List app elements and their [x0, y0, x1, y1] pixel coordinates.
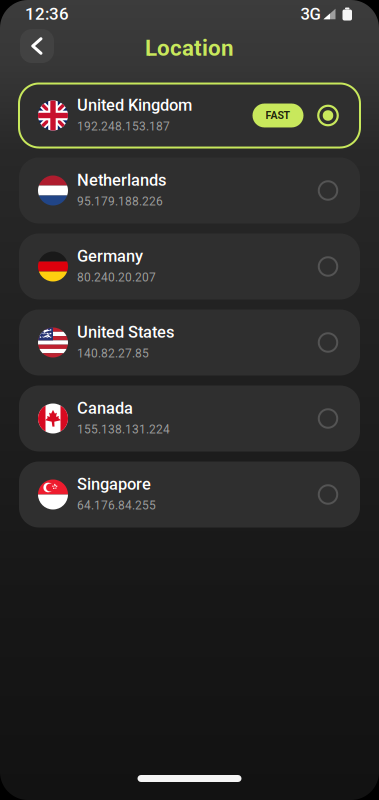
staticText: Location [145, 35, 234, 61]
staticText: Singapore [77, 475, 151, 494]
staticText: 3G [300, 4, 320, 24]
button[interactable]: Netherlands [19, 157, 360, 223]
staticText: Germany [77, 247, 143, 266]
staticText: 64.176.84.255 [77, 498, 156, 512]
staticText: United States [77, 323, 174, 342]
staticText: Netherlands [77, 171, 166, 190]
staticText: FAST [265, 109, 290, 122]
staticText: 140.82.27.85 [77, 346, 149, 360]
button[interactable]: Canada [19, 385, 360, 451]
staticText: United Kingdom [77, 96, 192, 115]
staticText: 155.138.131.224 [77, 422, 170, 436]
button[interactable]: Germany [19, 233, 360, 299]
staticText: 12:36 [25, 4, 69, 24]
button[interactable]: United Kingdom [19, 83, 360, 147]
staticText: 192.248.153.187 [77, 119, 170, 133]
staticText: 80.240.20.207 [77, 270, 156, 284]
button[interactable]: United States [19, 309, 360, 375]
button[interactable]: Back [20, 29, 54, 63]
button[interactable]: Singapore [19, 461, 360, 527]
staticText: 95.179.188.226 [77, 194, 163, 208]
staticText: Canada [77, 399, 133, 418]
